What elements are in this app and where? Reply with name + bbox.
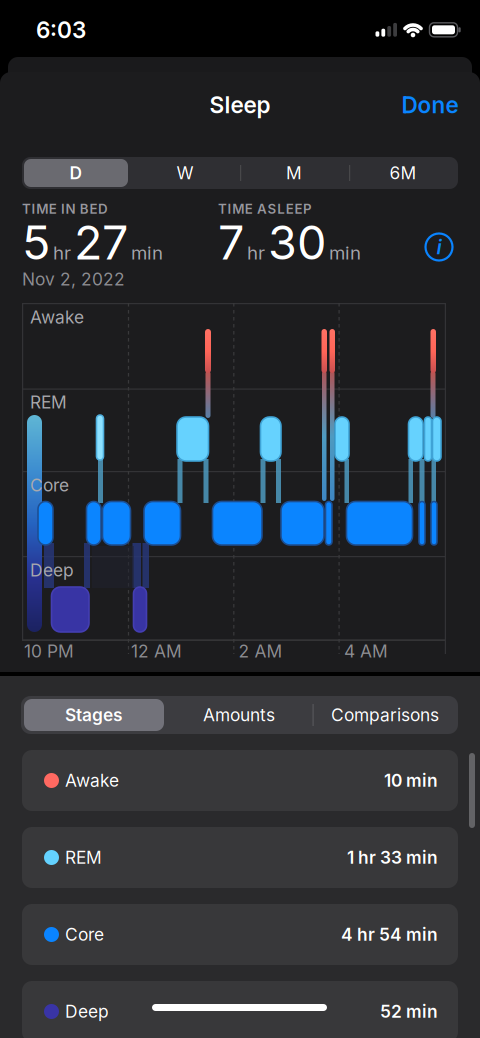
- staticText: Amounts: [203, 705, 275, 725]
- button[interactable]: i: [425, 233, 452, 260]
- staticText: Core: [65, 924, 104, 945]
- staticText: hr: [53, 242, 71, 264]
- staticText: 4 AM: [344, 641, 388, 661]
- staticText: min: [131, 242, 163, 264]
- button[interactable]: D: [69, 163, 82, 183]
- button[interactable]: Done: [401, 92, 458, 118]
- button[interactable]: W: [176, 163, 193, 183]
- button[interactable]: Awake: [22, 750, 458, 811]
- staticText: 7: [218, 215, 244, 270]
- staticText: TIME IN BED: [22, 201, 108, 217]
- staticText: 52 min: [380, 1001, 438, 1022]
- button[interactable]: 6M: [389, 163, 416, 183]
- staticText: 2 AM: [238, 641, 282, 661]
- staticText: REM: [30, 392, 67, 412]
- staticText: 1 hr 33 min: [347, 847, 438, 868]
- button[interactable]: Comparisons: [331, 705, 439, 725]
- button[interactable]: Stages: [65, 705, 123, 725]
- staticText: W: [176, 163, 193, 183]
- staticText: Done: [401, 92, 458, 118]
- staticText: 6M: [389, 163, 416, 183]
- staticText: i: [436, 235, 441, 259]
- button[interactable]: Amounts: [203, 705, 275, 725]
- button[interactable]: [0, 0, 104, 28]
- staticText: Awake: [30, 307, 84, 327]
- staticText: 27: [74, 215, 128, 270]
- staticText: 10 PM: [24, 641, 74, 661]
- staticText: M: [286, 163, 302, 183]
- staticText: Comparisons: [331, 705, 439, 725]
- staticText: 5: [22, 215, 50, 270]
- button[interactable]: REM: [22, 827, 458, 888]
- staticText: hr: [247, 242, 265, 264]
- staticText: Deep: [30, 560, 74, 580]
- staticText: TIME ASLEEP: [218, 201, 312, 217]
- staticText: REM: [65, 847, 102, 868]
- staticText: Awake: [65, 770, 119, 791]
- staticText: 10 min: [384, 770, 438, 791]
- staticText: 4 hr 54 min: [341, 924, 438, 945]
- button[interactable]: M: [286, 163, 302, 183]
- button[interactable]: Core: [22, 904, 458, 965]
- staticText: min: [329, 242, 361, 264]
- staticText: D: [69, 163, 82, 183]
- staticText: 12 AM: [131, 641, 182, 661]
- staticText: 30: [268, 215, 326, 270]
- staticText: Deep: [65, 1001, 109, 1022]
- staticText: 6:03: [36, 17, 86, 43]
- staticText: Core: [30, 475, 69, 495]
- button[interactable]: Deep: [22, 981, 458, 1038]
- staticText: Stages: [65, 705, 123, 725]
- staticText: Sleep: [209, 92, 270, 118]
- button[interactable]: [0, 0, 140, 32]
- staticText: Nov 2, 2022: [22, 269, 125, 289]
